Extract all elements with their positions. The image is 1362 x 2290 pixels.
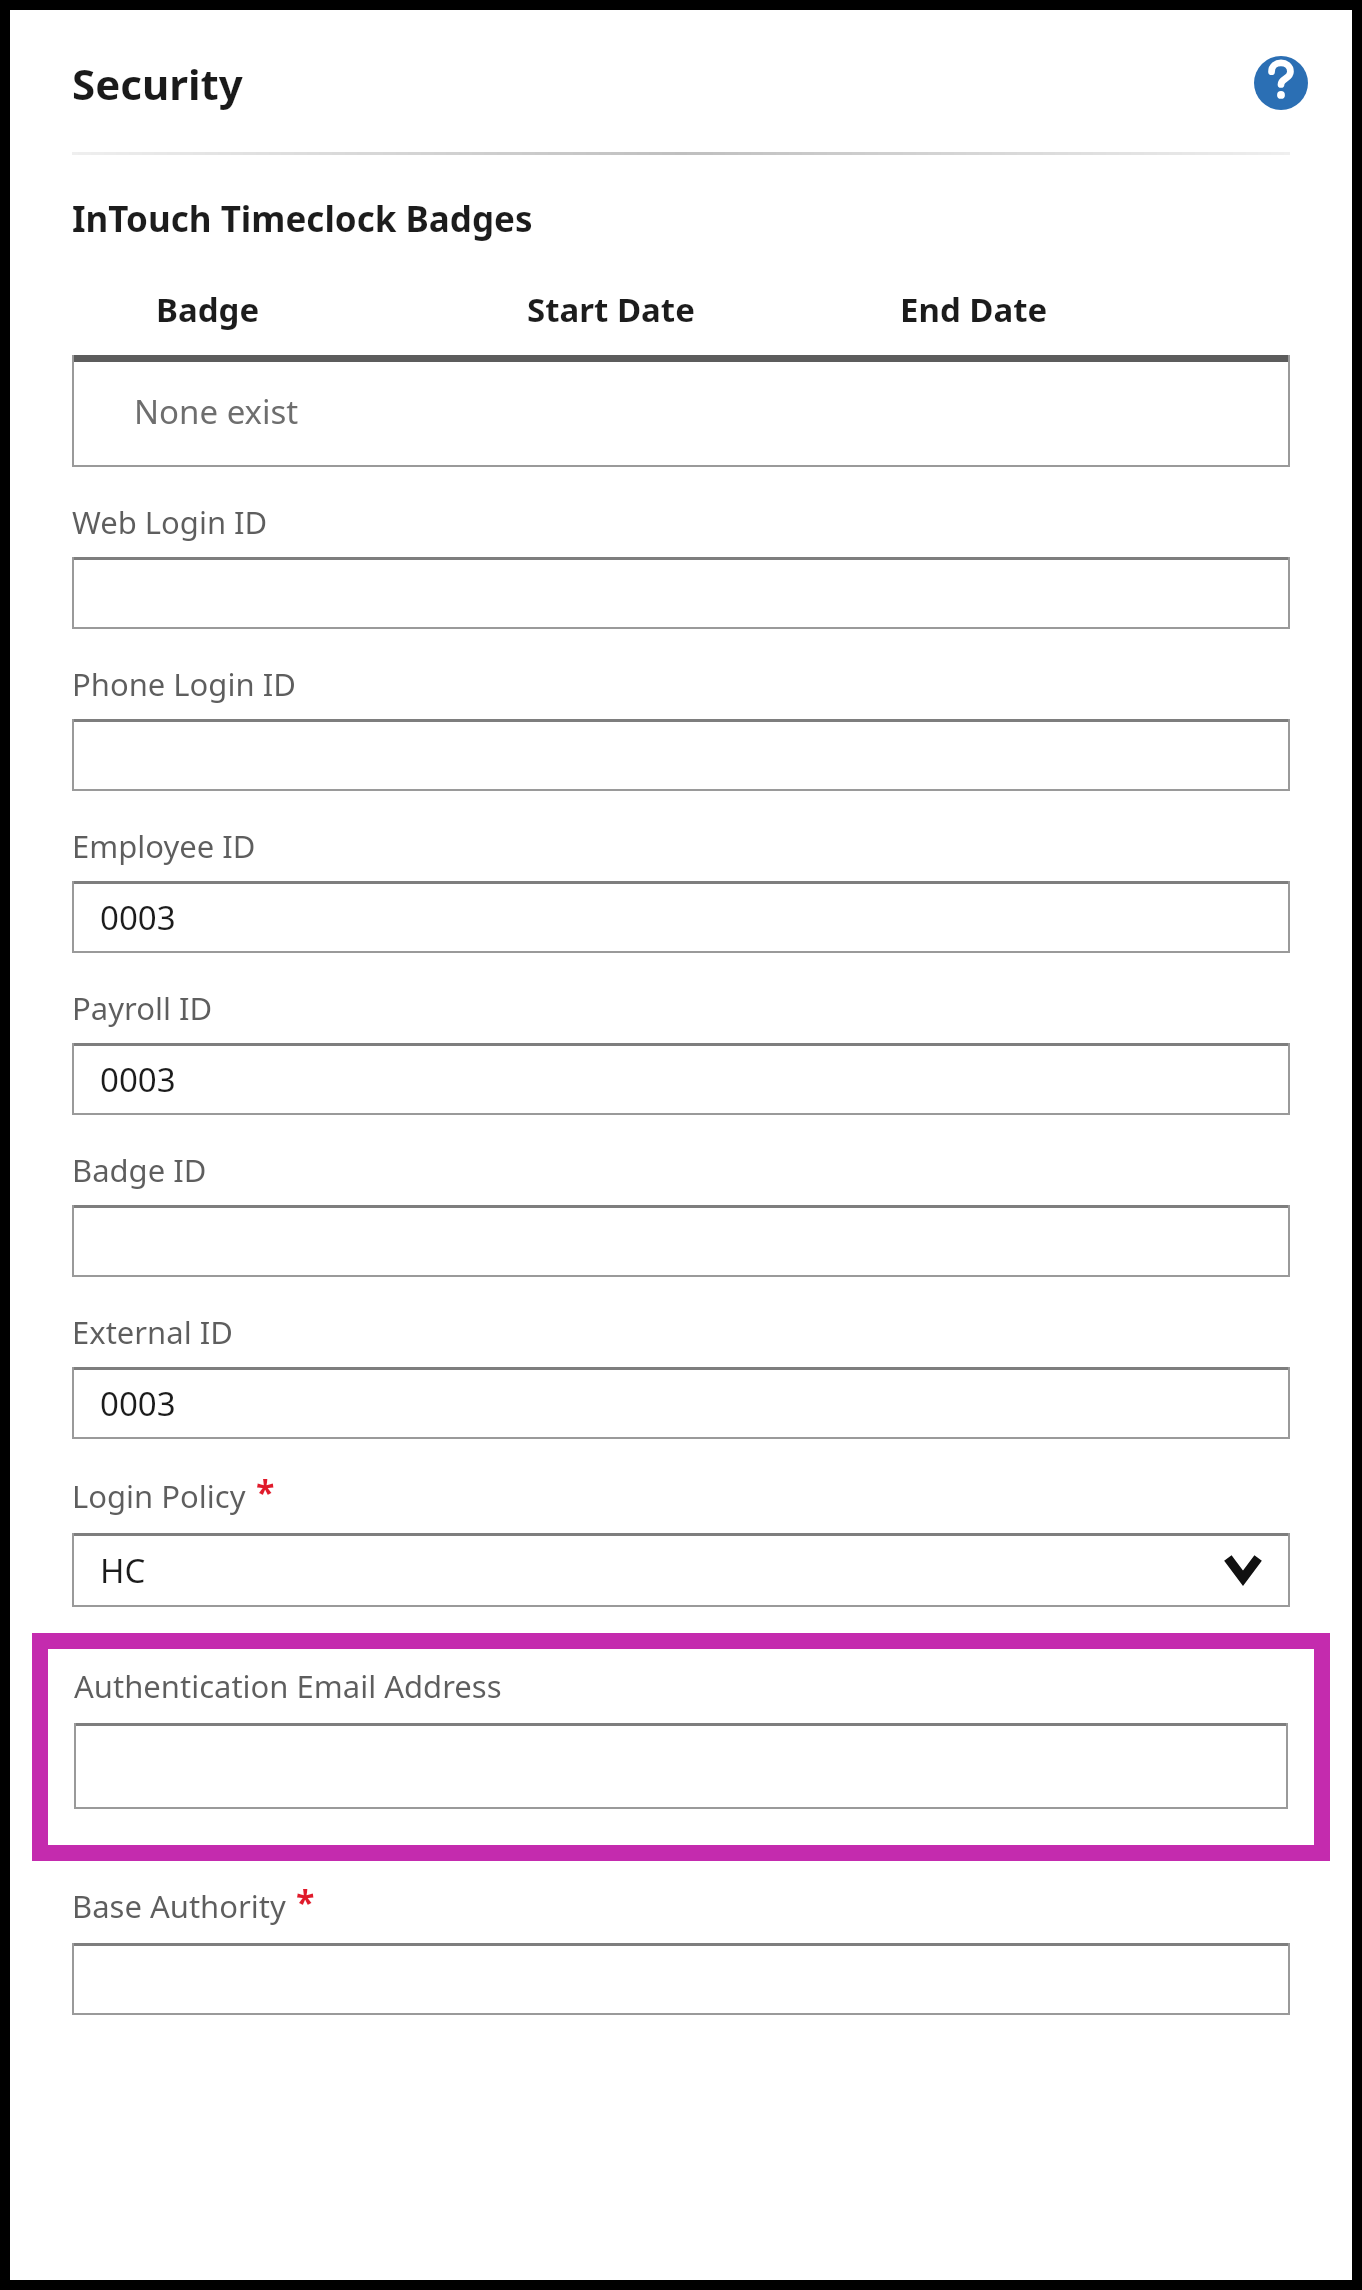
- staticText: 0003: [100, 1381, 176, 1426]
- staticText: HC: [100, 1548, 146, 1593]
- button[interactable]: Login Policy: [72, 1533, 1290, 1607]
- button[interactable]: Employee ID: [72, 881, 1290, 953]
- staticText: Payroll ID: [72, 987, 213, 1029]
- staticText: Base Authority: [72, 1885, 286, 1927]
- staticText: 0003: [100, 1057, 176, 1102]
- staticText: None exist: [134, 389, 299, 434]
- staticText: InTouch Timeclock Badges: [72, 195, 533, 243]
- button[interactable]: Phone Login ID: [72, 719, 1290, 791]
- staticText: Security: [72, 55, 1250, 112]
- staticText: Authentication Email Address: [74, 1665, 502, 1707]
- staticText: Login Policy: [72, 1475, 246, 1517]
- staticText: Phone Login ID: [72, 663, 296, 705]
- staticText: Badge ID: [72, 1149, 207, 1191]
- button[interactable]: Authentication Email Address: [74, 1723, 1288, 1809]
- staticText: Employee ID: [72, 825, 256, 867]
- staticText: Start Date: [527, 287, 695, 332]
- staticText: Badge: [156, 287, 260, 332]
- button[interactable]: External ID: [72, 1367, 1290, 1439]
- staticText: End Date: [900, 287, 1048, 332]
- staticText: *: [296, 1879, 315, 1925]
- button[interactable]: Payroll ID: [72, 1043, 1290, 1115]
- button[interactable]: Help: [1250, 52, 1312, 114]
- staticText: *: [256, 1469, 275, 1515]
- staticText: 0003: [100, 895, 176, 940]
- button[interactable]: Badge ID: [72, 1205, 1290, 1277]
- button[interactable]: Web Login ID: [72, 557, 1290, 629]
- button[interactable]: None exist: [72, 355, 1290, 467]
- button[interactable]: Base Authority: [72, 1943, 1290, 2015]
- staticText: External ID: [72, 1311, 233, 1353]
- staticText: Web Login ID: [72, 501, 268, 543]
